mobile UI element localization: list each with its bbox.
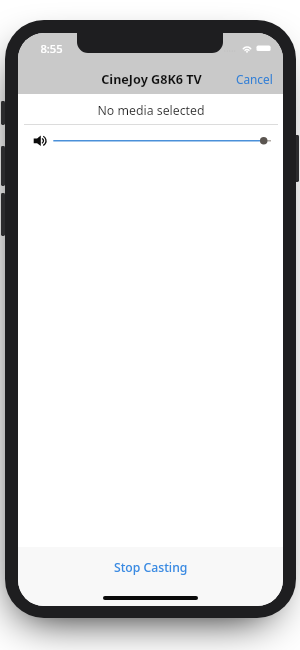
staticText: Stop Casting: [114, 559, 188, 576]
staticText: CineJoy G8K6 TV: [101, 71, 202, 88]
staticText: 8:55: [40, 41, 63, 56]
button[interactable]: Volume: [25, 128, 283, 154]
staticText: Cancel: [236, 71, 273, 87]
button[interactable]: Cancel: [230, 69, 278, 89]
staticText: No media selected: [97, 102, 205, 119]
button[interactable]: Stop Casting: [111, 557, 191, 577]
